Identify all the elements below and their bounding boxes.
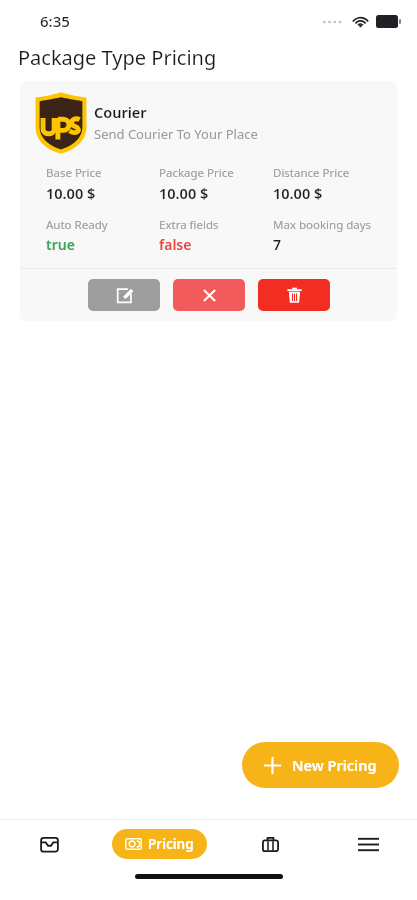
staticText: Auto Ready — [46, 217, 108, 233]
staticText: Max booking days — [273, 217, 372, 233]
staticText: 10.00 $ — [159, 183, 209, 203]
staticText: Pricing — [148, 835, 194, 853]
staticText: Distance Price — [273, 165, 350, 181]
staticText: New Pricing — [292, 755, 377, 775]
staticText: Send Courier To Your Place — [94, 125, 258, 143]
staticText: Package Type Pricing — [18, 44, 217, 71]
button[interactable]: Pricing — [112, 829, 207, 859]
staticText: Package Price — [159, 165, 234, 181]
staticText: 10.00 $ — [46, 183, 96, 203]
button[interactable]: New Pricing — [242, 742, 399, 788]
staticText: Extra fields — [159, 217, 219, 233]
staticText: true — [46, 235, 75, 254]
button[interactable]: Menu — [319, 837, 417, 852]
button[interactable]: Courier — [20, 81, 397, 321]
button[interactable]: Edit — [88, 279, 160, 311]
staticText: Courier — [94, 102, 147, 122]
button[interactable]: Inbox — [0, 820, 98, 868]
button[interactable]: Cancel — [173, 279, 245, 311]
staticText: Base Price — [46, 165, 102, 181]
staticText: 10.00 $ — [273, 183, 323, 203]
button[interactable]: Delete — [258, 279, 330, 311]
staticText: false — [159, 235, 192, 254]
staticText: 6:35 — [40, 11, 70, 31]
staticText: 7 — [273, 235, 282, 254]
button[interactable]: Services — [221, 834, 319, 855]
